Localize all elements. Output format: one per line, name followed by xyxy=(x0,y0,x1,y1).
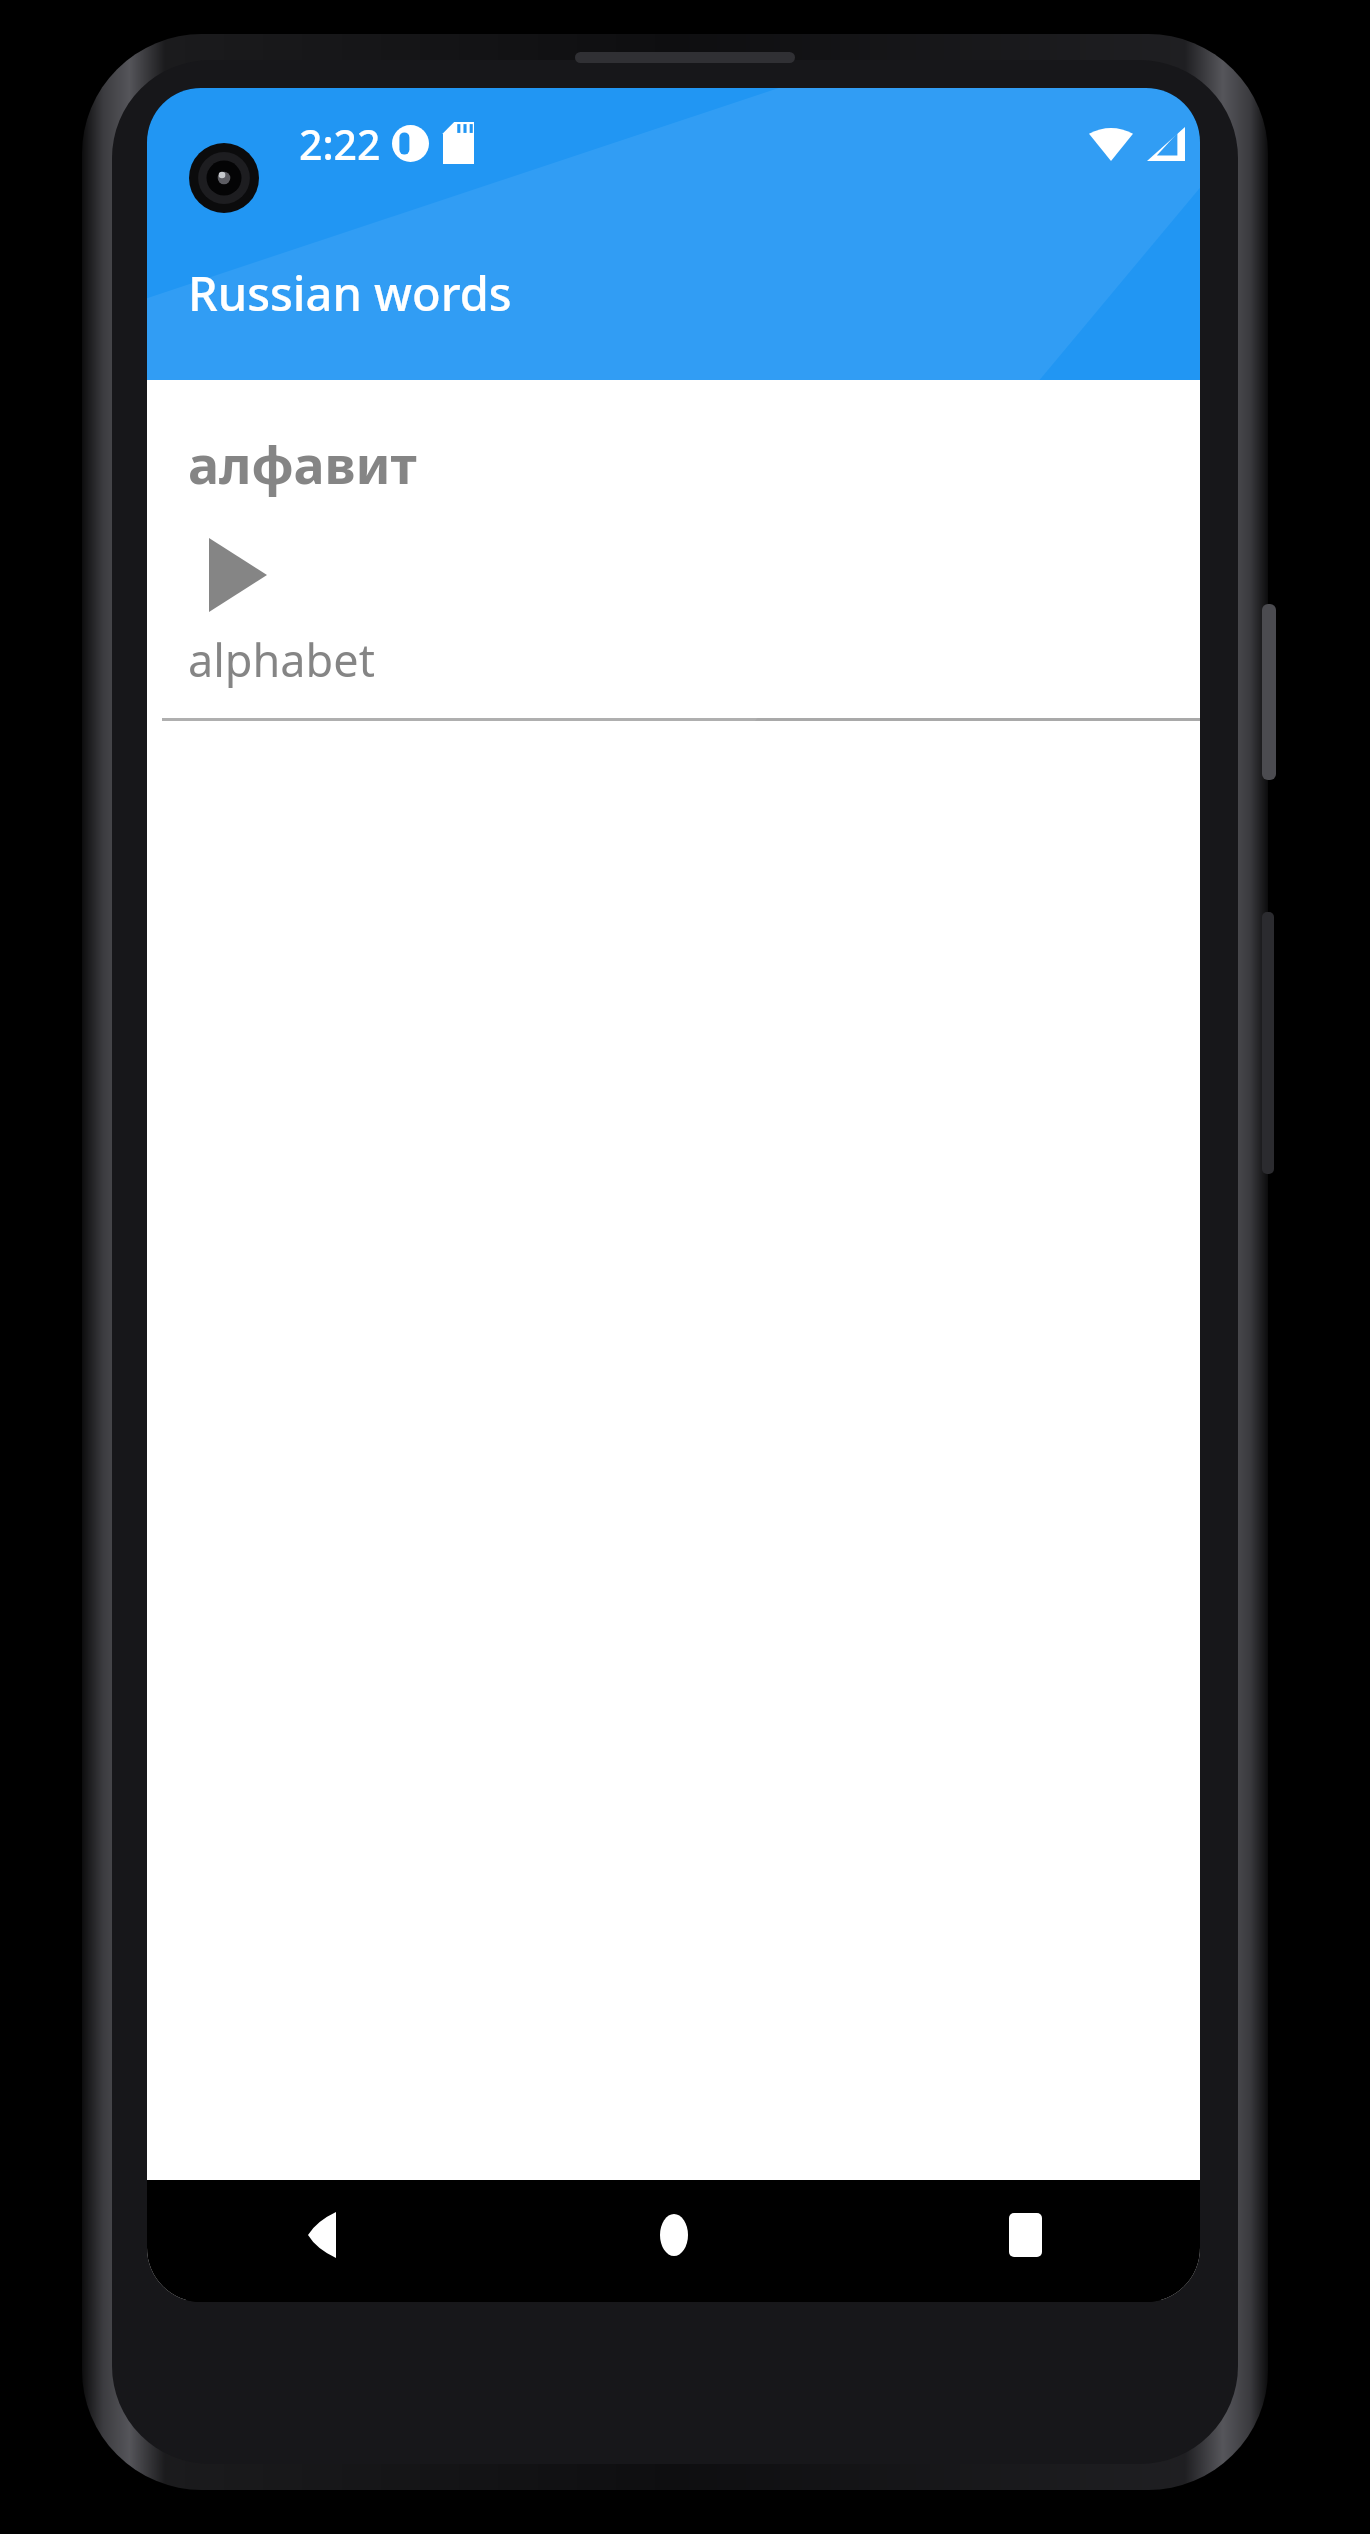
button[interactable]: Play pronunciation xyxy=(209,527,309,623)
staticText: alphabet xyxy=(188,629,375,690)
staticText: 2:22 xyxy=(299,116,381,172)
button[interactable]: Back xyxy=(275,2188,369,2282)
staticText: алфавит xyxy=(188,428,417,499)
staticText: Russian words xyxy=(188,261,512,325)
button[interactable]: Home xyxy=(627,2188,721,2282)
button[interactable]: алфавит xyxy=(147,380,1200,721)
button[interactable]: Recent apps xyxy=(978,2188,1072,2282)
